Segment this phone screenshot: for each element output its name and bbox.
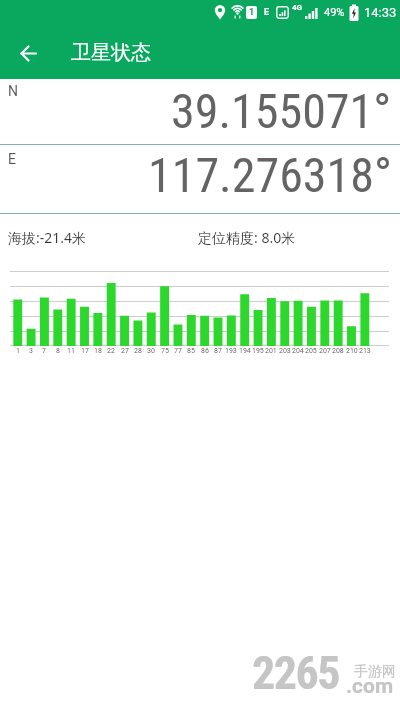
staticText: 30 <box>147 347 155 355</box>
staticText: 203 <box>279 347 291 355</box>
staticText: 定位精度: 8.0米 <box>198 228 296 247</box>
staticText: 194 <box>239 347 251 355</box>
staticText: 213 <box>359 347 371 355</box>
staticText: 77 <box>174 347 182 355</box>
staticText: 85 <box>187 347 195 355</box>
staticText: E <box>264 7 270 18</box>
staticText: 193 <box>225 347 237 355</box>
staticText: 17 <box>81 347 89 355</box>
staticText: 11 <box>67 347 75 355</box>
staticText: N <box>8 83 18 99</box>
staticText: .com <box>346 674 394 699</box>
staticText: 1 <box>249 7 255 18</box>
staticText: 204 <box>292 347 304 355</box>
staticText: 7 <box>42 347 46 355</box>
staticText: 海拔:-21.4米 <box>8 228 87 247</box>
staticText: 2265 <box>252 646 340 700</box>
staticText: 210 <box>346 347 358 355</box>
staticText: 8 <box>56 347 60 355</box>
staticText: 18 <box>94 347 102 355</box>
staticText: 201 <box>265 347 277 355</box>
staticText: 1 <box>16 347 20 355</box>
staticText: E <box>8 151 16 167</box>
staticText: 卫星状态 <box>71 40 151 65</box>
staticText: 87 <box>214 347 222 355</box>
staticText: 4G <box>292 3 303 12</box>
staticText: 3 <box>29 347 33 355</box>
staticText: 28 <box>134 347 142 355</box>
staticText: 207 <box>319 347 331 355</box>
staticText: 86 <box>201 347 209 355</box>
staticText: 39.155071° <box>171 83 392 139</box>
staticText: 手游网 <box>354 663 396 681</box>
staticText: 75 <box>161 347 169 355</box>
button[interactable]: N <box>0 79 400 144</box>
staticText: 208 <box>332 347 344 355</box>
staticText: 14:33 <box>364 5 397 20</box>
button[interactable] <box>11 36 45 70</box>
staticText: 117.276318° <box>148 147 392 203</box>
staticText: 205 <box>305 347 317 355</box>
staticText: 27 <box>121 347 129 355</box>
staticText: 49% <box>324 6 345 19</box>
button[interactable]: E <box>0 145 400 213</box>
staticText: 195 <box>252 347 264 355</box>
staticText: 22 <box>107 347 115 355</box>
